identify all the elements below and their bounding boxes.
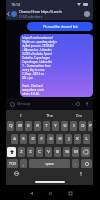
staticText: . [75,161,76,166]
button[interactable]: Back [6,8,11,20]
button[interactable]: T [43,121,50,131]
button[interactable]: Enter [81,159,92,168]
button[interactable]: M [72,147,79,157]
button[interactable]: Shift [7,147,16,157]
staticText: O [81,123,85,129]
button[interactable]: B [54,147,61,157]
staticText: I [20,113,22,118]
button[interactable]: Z [18,147,25,157]
button[interactable]: E [25,121,32,131]
button[interactable]: O [79,121,86,131]
button[interactable]: C [36,147,43,157]
staticText: ?123 [9,162,16,166]
button[interactable]: S [20,134,27,144]
button[interactable]: The [35,110,64,121]
button[interactable]: J [65,134,72,144]
button[interactable]: . [72,159,79,168]
staticText: Kaart - Chad and [22,84,43,88]
button[interactable]: Profile [84,11,90,17]
button[interactable]: https://t.me/newchannel [20,34,93,97]
button[interactable]: , [20,159,27,168]
staticText: space [45,162,54,166]
staticText: Pls read the channel link [43,25,78,29]
button[interactable]: I [70,121,77,131]
button[interactable]: Q [7,121,14,131]
staticText: Kschafor- Copenhagen [22,56,50,60]
staticText: M [74,149,78,155]
staticText: Q [9,123,13,129]
staticText: G [49,136,53,142]
button[interactable]: X [27,147,34,157]
staticText: H [58,136,62,142]
staticText: S [22,136,25,142]
staticText: https://t.me/newchannel [22,36,53,40]
button[interactable]: F [38,134,45,144]
staticText: R [36,123,39,129]
staticText: F [40,136,43,142]
button[interactable]: L [83,134,90,144]
staticText: Channel from https://t.me/x [19,10,62,14]
staticText: GB + yes [22,76,33,80]
button[interactable]: K [74,134,81,144]
button[interactable]: W [16,121,23,131]
button[interactable]: Recent apps [66,189,74,197]
button[interactable]: Attach [75,101,81,107]
staticText: N [65,149,69,155]
button[interactable]: A [11,134,18,144]
staticText: D [31,136,35,142]
button[interactable]: P [88,121,92,131]
button[interactable]: Backspace [81,147,90,157]
staticText: Z [20,149,23,155]
staticText: Message [17,102,31,106]
staticText: I'm [76,113,82,118]
button[interactable]: Back [27,189,35,197]
staticText: Aplled ipsumai - DEOCAM [22,44,54,48]
staticText: J [68,136,70,142]
button[interactable]: space [29,159,70,168]
staticText: where it FLAZ. [22,92,40,95]
button[interactable]: Voice input [77,170,84,177]
button[interactable]: U [61,121,68,131]
staticText: X [29,149,32,155]
button[interactable]: G [47,134,54,144]
staticText: - kllpessa Les - Ldamdsn [22,48,52,52]
staticText: 10:14 [11,2,20,7]
button[interactable]: H [56,134,63,144]
button[interactable]: Y [52,121,59,131]
staticText: Y [54,123,57,129]
staticText: B [56,149,59,155]
staticText: , [23,161,24,166]
staticText: W [18,123,22,129]
button[interactable]: V [45,147,52,157]
staticText: C [38,149,41,155]
staticText: The [46,113,53,118]
staticText: T [45,123,48,129]
button[interactable]: Voice message [84,101,90,107]
button[interactable]: Change keyboard language [13,170,20,177]
staticText: 1. - Conversations from [22,64,51,68]
button[interactable]: D [29,134,36,144]
staticText: A [13,136,16,142]
staticText: I [73,123,75,129]
button[interactable]: R [34,121,41,131]
staticText: 12 345 subscribers [19,15,42,19]
staticText: Nights on - openbaq ratelyn [22,40,57,44]
staticText: every day to a ma: [22,68,45,72]
staticText: E [27,123,30,129]
button[interactable]: N [63,147,70,157]
staticText: C-Shop - 04/14 aa [22,72,44,76]
button[interactable]: ?123 [7,159,18,168]
staticText: everywhere a sotr [22,88,44,92]
button[interactable]: I'm [64,110,93,121]
staticText: El-SSR a Kschabz- Speed [22,52,52,56]
staticText: U [63,123,67,129]
button[interactable]: Pls read the channel link [27,22,93,31]
staticText: Copenhagen- Lisboa list [22,60,52,64]
staticText: K [76,136,79,142]
staticText: P [89,123,92,129]
staticText: L [85,136,88,142]
staticText: V [47,149,50,155]
button[interactable]: I [6,110,35,121]
button[interactable]: Emoji [9,101,15,107]
button[interactable]: Home [46,189,54,197]
